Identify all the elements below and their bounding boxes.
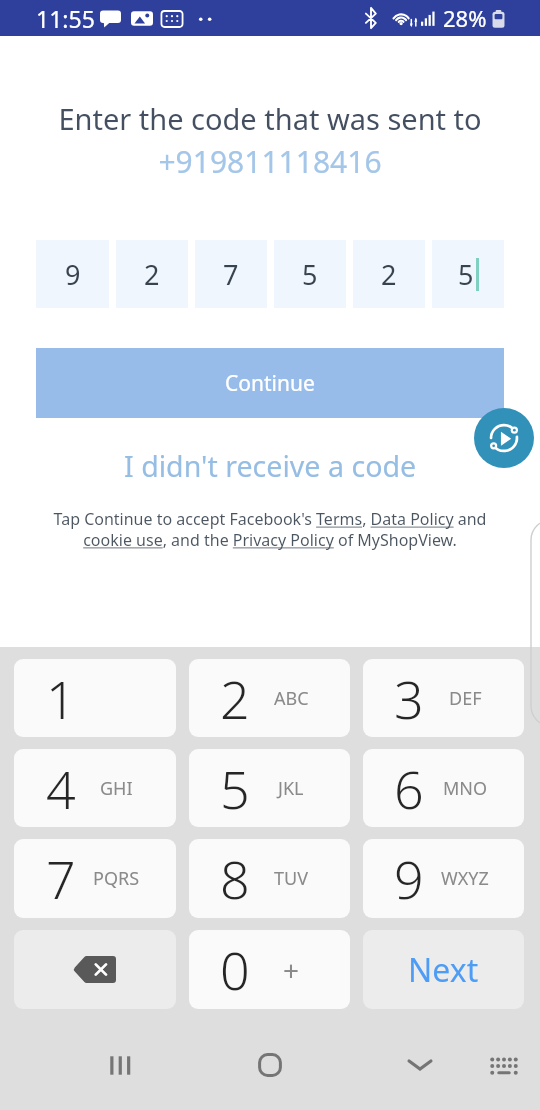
button[interactable]: Backspace	[14, 930, 176, 1009]
staticText: 5	[302, 256, 318, 293]
button[interactable]: 2	[116, 240, 188, 308]
staticText: PQRS	[93, 866, 140, 891]
staticText: Tap Continue to accept Facebook's Terms,…	[0, 508, 540, 551]
staticText: 7	[46, 843, 76, 914]
staticText: DEF	[449, 686, 482, 711]
button[interactable]: 6	[363, 749, 524, 827]
staticText: ABC	[274, 686, 309, 711]
button[interactable]: 4	[14, 749, 176, 827]
staticText: 2	[381, 256, 397, 293]
staticText: 4	[46, 753, 76, 824]
staticText: WXYZ	[441, 866, 489, 891]
button[interactable]: 8	[189, 839, 350, 918]
button[interactable]: 5	[189, 749, 350, 827]
button[interactable]: Next	[363, 930, 524, 1009]
staticText: 5	[458, 256, 474, 293]
staticText: 1	[46, 663, 76, 734]
staticText: Continue	[225, 369, 315, 398]
button[interactable]: 5	[432, 240, 504, 308]
staticText: 6	[394, 753, 424, 824]
staticText: 8	[220, 843, 250, 914]
button[interactable]: 2	[353, 240, 425, 308]
button[interactable]: 9	[363, 839, 524, 918]
staticText: 0	[220, 934, 250, 1005]
button[interactable]: Change keyboard	[468, 1038, 540, 1092]
button[interactable]: 9	[36, 240, 109, 308]
staticText: GHI	[100, 776, 133, 801]
button[interactable]: Continue	[36, 348, 504, 418]
staticText: JKL	[278, 776, 304, 801]
staticText: 9	[394, 843, 424, 914]
staticText: TUV	[274, 866, 308, 891]
button[interactable]: Hide keyboard	[370, 1038, 470, 1092]
staticText: I didn't receive a code	[124, 446, 417, 485]
button[interactable]: 7	[195, 240, 267, 308]
staticText: 9	[65, 256, 81, 293]
staticText: 3	[394, 663, 424, 734]
button[interactable]: 0	[189, 930, 350, 1009]
staticText: 7	[223, 256, 239, 293]
staticText: +919811118416	[0, 141, 540, 182]
button[interactable]: Home	[210, 1038, 330, 1092]
button[interactable]: 3	[363, 659, 524, 737]
button[interactable]: 5	[274, 240, 346, 308]
staticText: 28%	[443, 3, 487, 33]
button[interactable]: Screen recorder	[474, 408, 534, 468]
button[interactable]: 1	[14, 659, 176, 737]
staticText: 2	[144, 256, 160, 293]
staticText: 5	[220, 753, 250, 824]
button[interactable]: I didn't receive a code	[0, 443, 540, 487]
staticText: 2	[220, 663, 250, 734]
button[interactable]: 7	[14, 839, 176, 918]
button[interactable]: Recents	[59, 1038, 179, 1092]
button[interactable]: 2	[189, 659, 350, 737]
staticText: MNO	[443, 776, 488, 801]
staticText: Enter the code that was sent to	[0, 99, 540, 138]
staticText: +	[283, 951, 300, 989]
staticText: 11:55	[36, 3, 95, 34]
staticText: Next	[408, 948, 479, 992]
